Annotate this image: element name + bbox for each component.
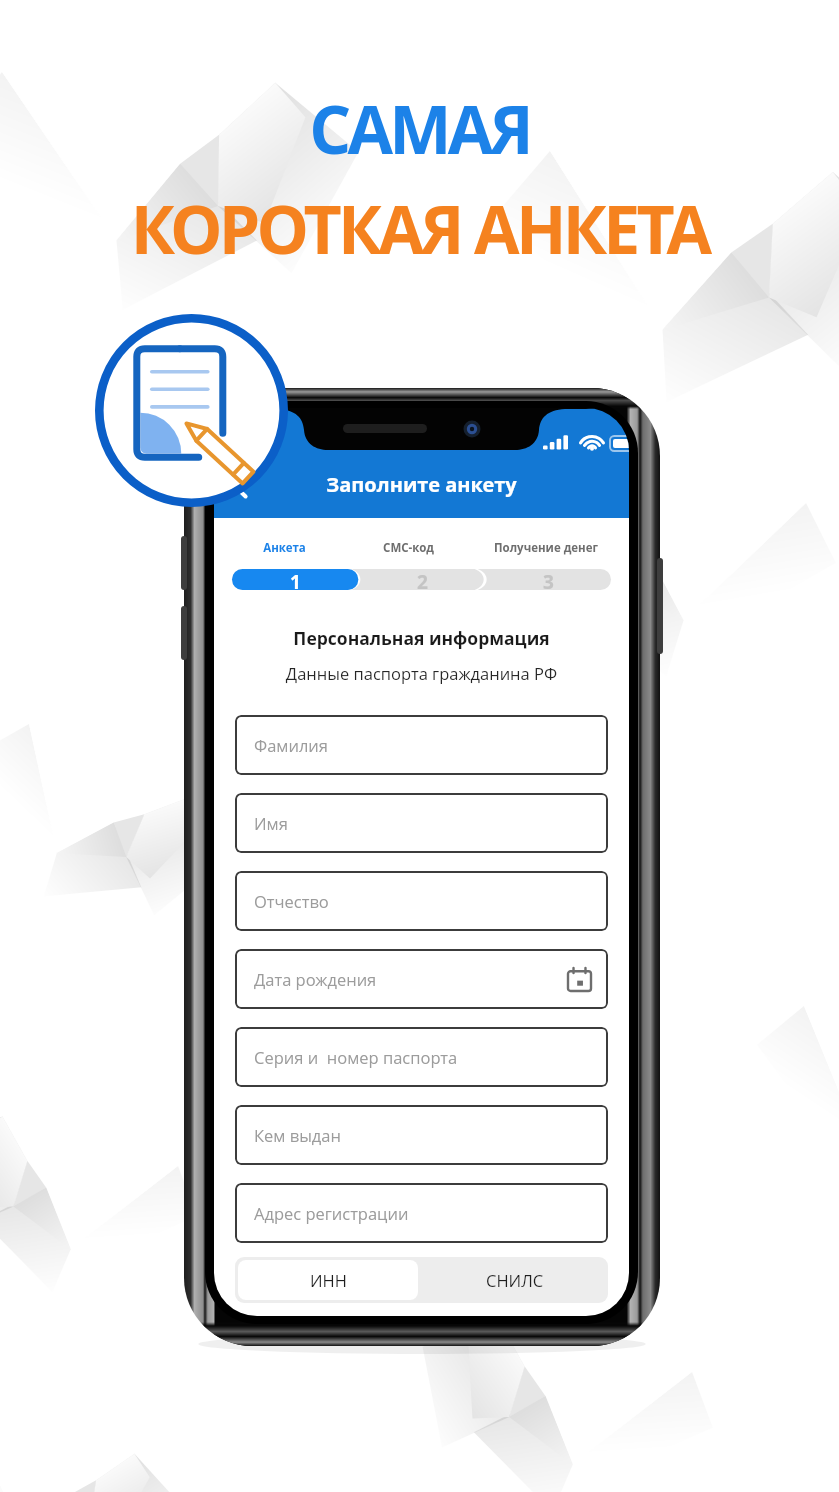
staticText: 2 bbox=[417, 569, 428, 590]
button[interactable]: ИНН bbox=[238, 1260, 418, 1300]
button[interactable]: 1 bbox=[232, 569, 359, 590]
button[interactable]: Отчество bbox=[235, 871, 608, 931]
staticText: 1 bbox=[290, 569, 301, 590]
staticText: Отчество bbox=[254, 890, 329, 912]
button[interactable]: Кем выдан bbox=[235, 1105, 608, 1165]
button[interactable]: СНИЛС bbox=[421, 1257, 608, 1303]
staticText: СМС-код bbox=[383, 540, 434, 556]
button[interactable]: Назад bbox=[227, 474, 257, 504]
staticText: Анкета bbox=[263, 540, 306, 556]
button[interactable]: Имя bbox=[235, 793, 608, 853]
staticText: Кем выдан bbox=[254, 1124, 341, 1146]
staticText: Серия и номер паспорта bbox=[254, 1046, 458, 1068]
staticText: ИНН bbox=[310, 1269, 347, 1291]
staticText: КОРОТКАЯ АНКЕТА bbox=[0, 183, 839, 273]
staticText: СНИЛС bbox=[486, 1269, 544, 1291]
staticText: Адрес регистрации bbox=[254, 1202, 409, 1224]
staticText: Данные паспорта гражданина РФ bbox=[214, 662, 629, 684]
staticText: 3 bbox=[543, 569, 554, 590]
staticText: Имя bbox=[254, 812, 288, 834]
staticText: Заполните анкету bbox=[214, 471, 629, 498]
staticText: Получение денег bbox=[494, 540, 598, 556]
staticText: Персональная информация bbox=[214, 626, 629, 650]
button[interactable]: 2 bbox=[359, 569, 485, 590]
button[interactable]: Серия и номер паспорта bbox=[235, 1027, 608, 1087]
button[interactable]: Получение денег bbox=[471, 537, 621, 559]
staticText: Дата рождения bbox=[254, 968, 377, 990]
button[interactable]: СМС-код bbox=[346, 537, 471, 559]
button[interactable]: Дата рождения bbox=[235, 949, 608, 1009]
button[interactable]: Адрес регистрации bbox=[235, 1183, 608, 1243]
button[interactable]: 3 bbox=[485, 569, 611, 590]
button[interactable]: Фамилия bbox=[235, 715, 608, 775]
staticText: Фамилия bbox=[254, 734, 328, 756]
staticText: САМАЯ bbox=[0, 83, 839, 173]
button[interactable]: Анкета bbox=[222, 537, 346, 559]
